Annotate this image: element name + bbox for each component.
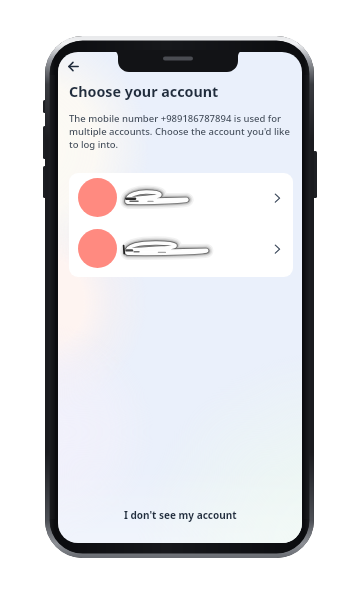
other: Open account	[272, 192, 284, 204]
staticText: I don't see my account	[124, 508, 237, 522]
staticText: The mobile number +989186787894 is used …	[69, 112, 293, 151]
staticText: Choose your account	[69, 82, 219, 101]
button[interactable]: Back	[60, 53, 86, 79]
other: Open account	[272, 243, 284, 255]
button[interactable]: Open account	[69, 223, 293, 274]
button[interactable]: Open account	[69, 173, 293, 223]
button[interactable]: I don't see my account	[114, 503, 247, 527]
